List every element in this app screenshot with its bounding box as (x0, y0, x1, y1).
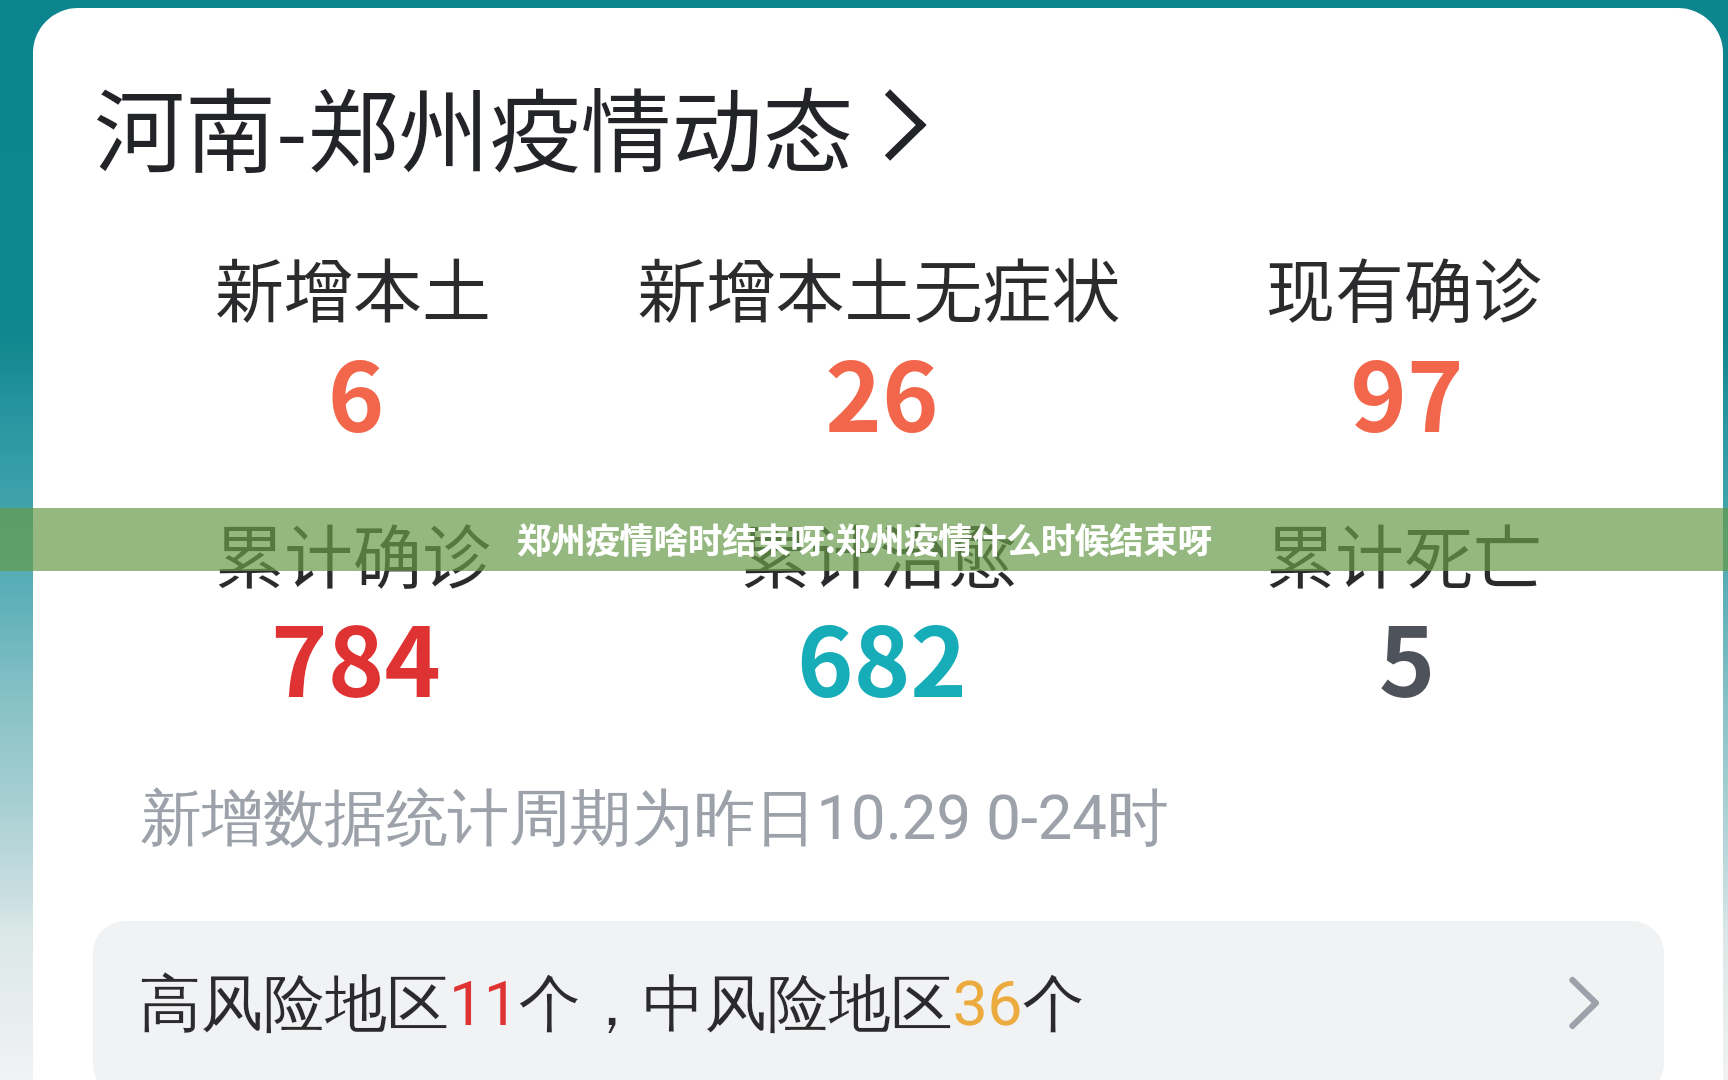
button[interactable]: 累计死亡 (1141, 503, 1667, 694)
staticText: 新增本土 (90, 237, 616, 337)
staticText: 高风险地区11个，中风险地区36个 (139, 965, 1085, 1043)
staticText: 河南-郑州疫情动态 (94, 59, 854, 191)
staticText: 97 (1144, 321, 1670, 460)
button[interactable]: 新增本土无症状 (616, 237, 1142, 429)
button[interactable]: 河南-郑州疫情动态 (94, 59, 924, 191)
button[interactable]: 累计确诊 (90, 503, 616, 694)
staticText: 784 (93, 586, 619, 725)
other: 查看风险地区详情 (1571, 978, 1598, 1028)
staticText: 郑州疫情啥时结束呀:郑州疫情什么时候结束呀 (517, 513, 1212, 563)
staticText: 6 (93, 321, 619, 460)
staticText: 累计治愈 (616, 503, 1142, 603)
button[interactable]: 现有确诊 (1141, 237, 1667, 429)
staticText: 682 (619, 586, 1145, 725)
staticText: 26 (619, 321, 1145, 460)
button[interactable]: 新增本土 (90, 237, 616, 429)
staticText: 5 (1144, 586, 1670, 725)
staticText: 累计确诊 (90, 503, 616, 603)
other: 查看河南-郑州疫情动态详情 (888, 92, 924, 158)
staticText: 新增数据统计周期为昨日10.29 0-24时 (140, 780, 1169, 857)
staticText: 新增本土无症状 (616, 237, 1142, 337)
button[interactable]: 高风险地区11个，中风险地区36个 (93, 921, 1664, 1080)
button[interactable]: 累计治愈 (616, 503, 1142, 694)
staticText: 现有确诊 (1141, 237, 1667, 337)
staticText: 累计死亡 (1141, 503, 1667, 603)
